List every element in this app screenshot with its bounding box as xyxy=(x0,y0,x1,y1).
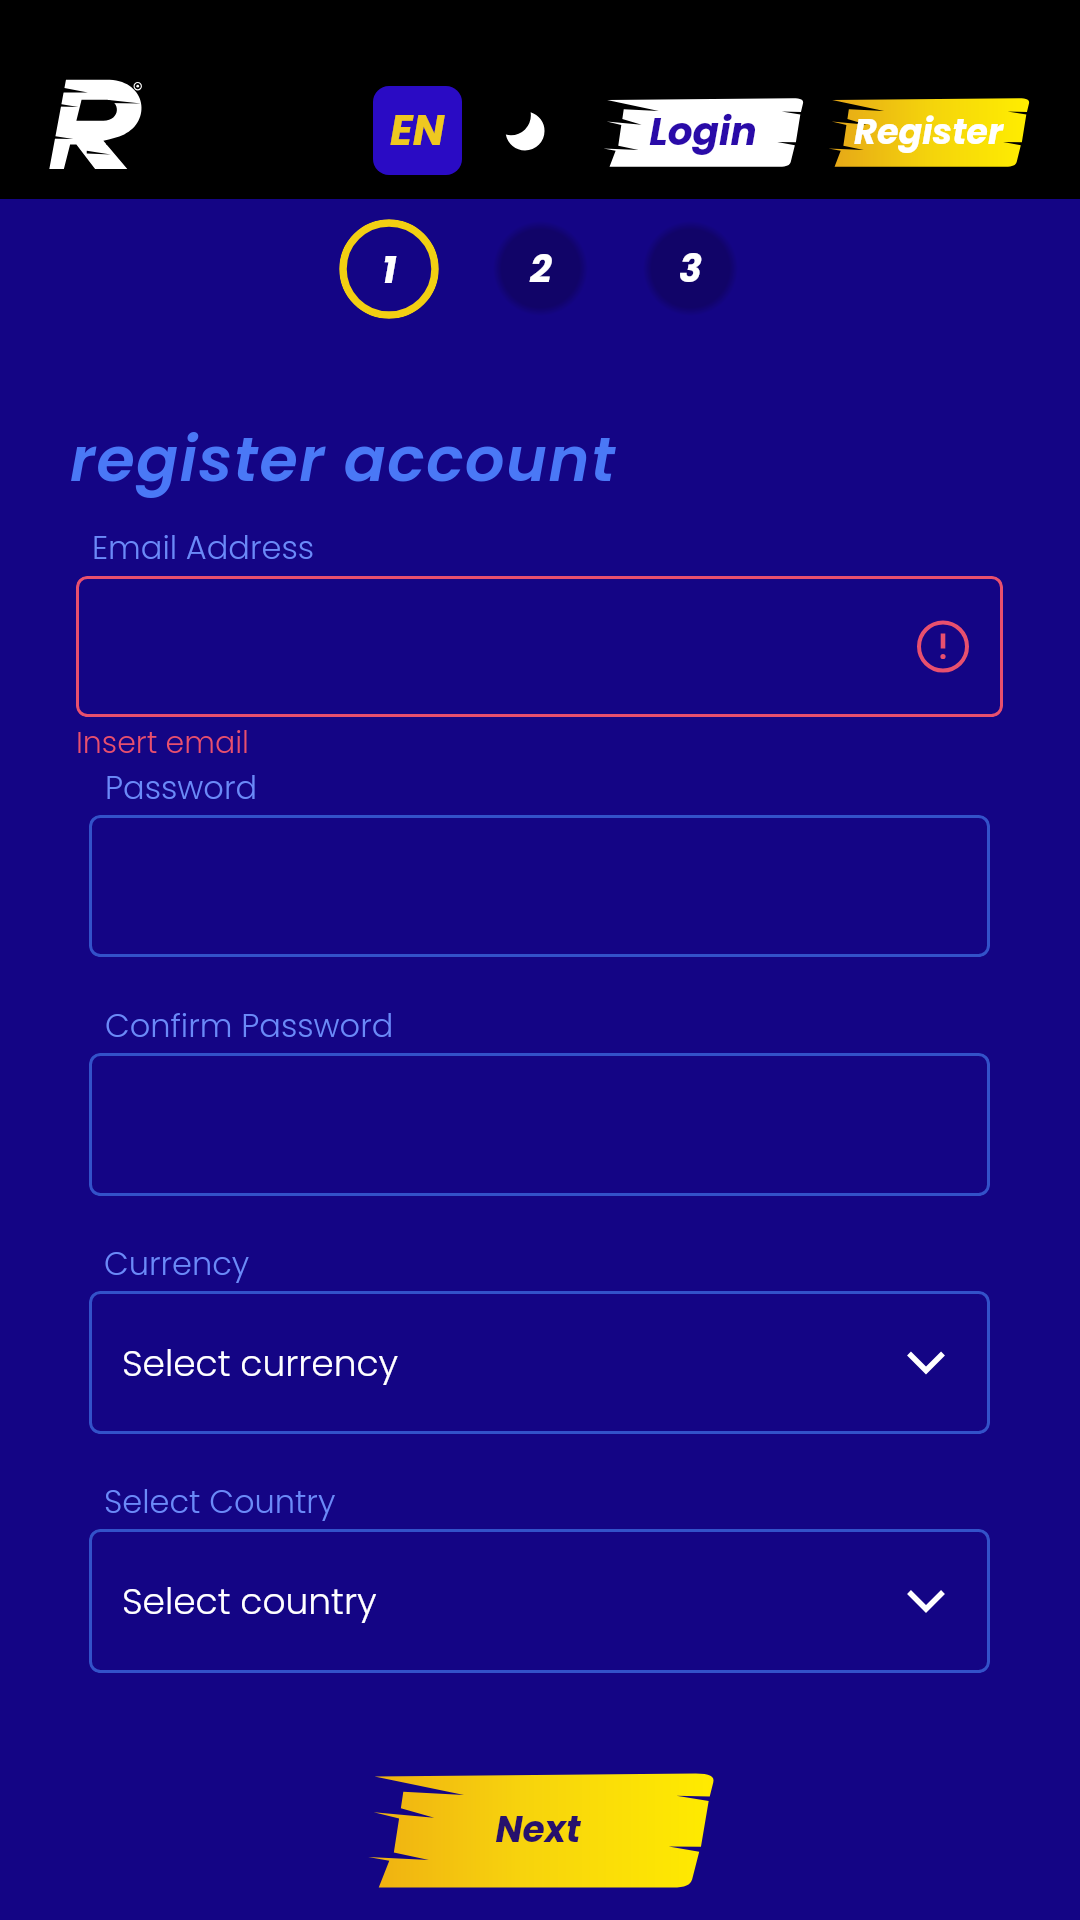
staticText: Currency xyxy=(104,1241,250,1286)
button[interactable]: Home xyxy=(41,78,145,169)
staticText: Next xyxy=(495,1804,581,1854)
staticText: Select country xyxy=(122,1576,377,1626)
button[interactable]: Login xyxy=(601,96,804,167)
button[interactable]: Next xyxy=(364,1770,715,1888)
button[interactable]: EN xyxy=(373,86,462,175)
button[interactable] xyxy=(89,815,990,957)
button[interactable]: Dark mode xyxy=(493,99,557,163)
button[interactable] xyxy=(76,576,1003,717)
button[interactable] xyxy=(89,1053,990,1196)
staticText: Select currency xyxy=(122,1338,399,1388)
staticText: Insert email xyxy=(76,722,249,764)
staticText: 3 xyxy=(679,242,702,295)
staticText: 1 xyxy=(382,243,397,296)
button[interactable]: Select country xyxy=(89,1529,990,1673)
staticText: Register xyxy=(854,107,1003,156)
staticText: Confirm Password xyxy=(105,1003,394,1048)
staticText: Email Address xyxy=(92,525,315,570)
button[interactable]: Select currency xyxy=(89,1291,990,1434)
button[interactable]: 1 xyxy=(339,219,439,319)
staticText: register account xyxy=(70,416,617,503)
button[interactable]: 3 xyxy=(643,221,738,316)
staticText: EN xyxy=(390,101,445,160)
button[interactable]: Register xyxy=(826,96,1030,167)
button[interactable]: 2 xyxy=(493,221,588,316)
staticText: Login xyxy=(649,104,757,159)
staticText: Password xyxy=(105,765,258,810)
staticText: Select Country xyxy=(104,1479,336,1524)
staticText: 2 xyxy=(530,242,552,295)
